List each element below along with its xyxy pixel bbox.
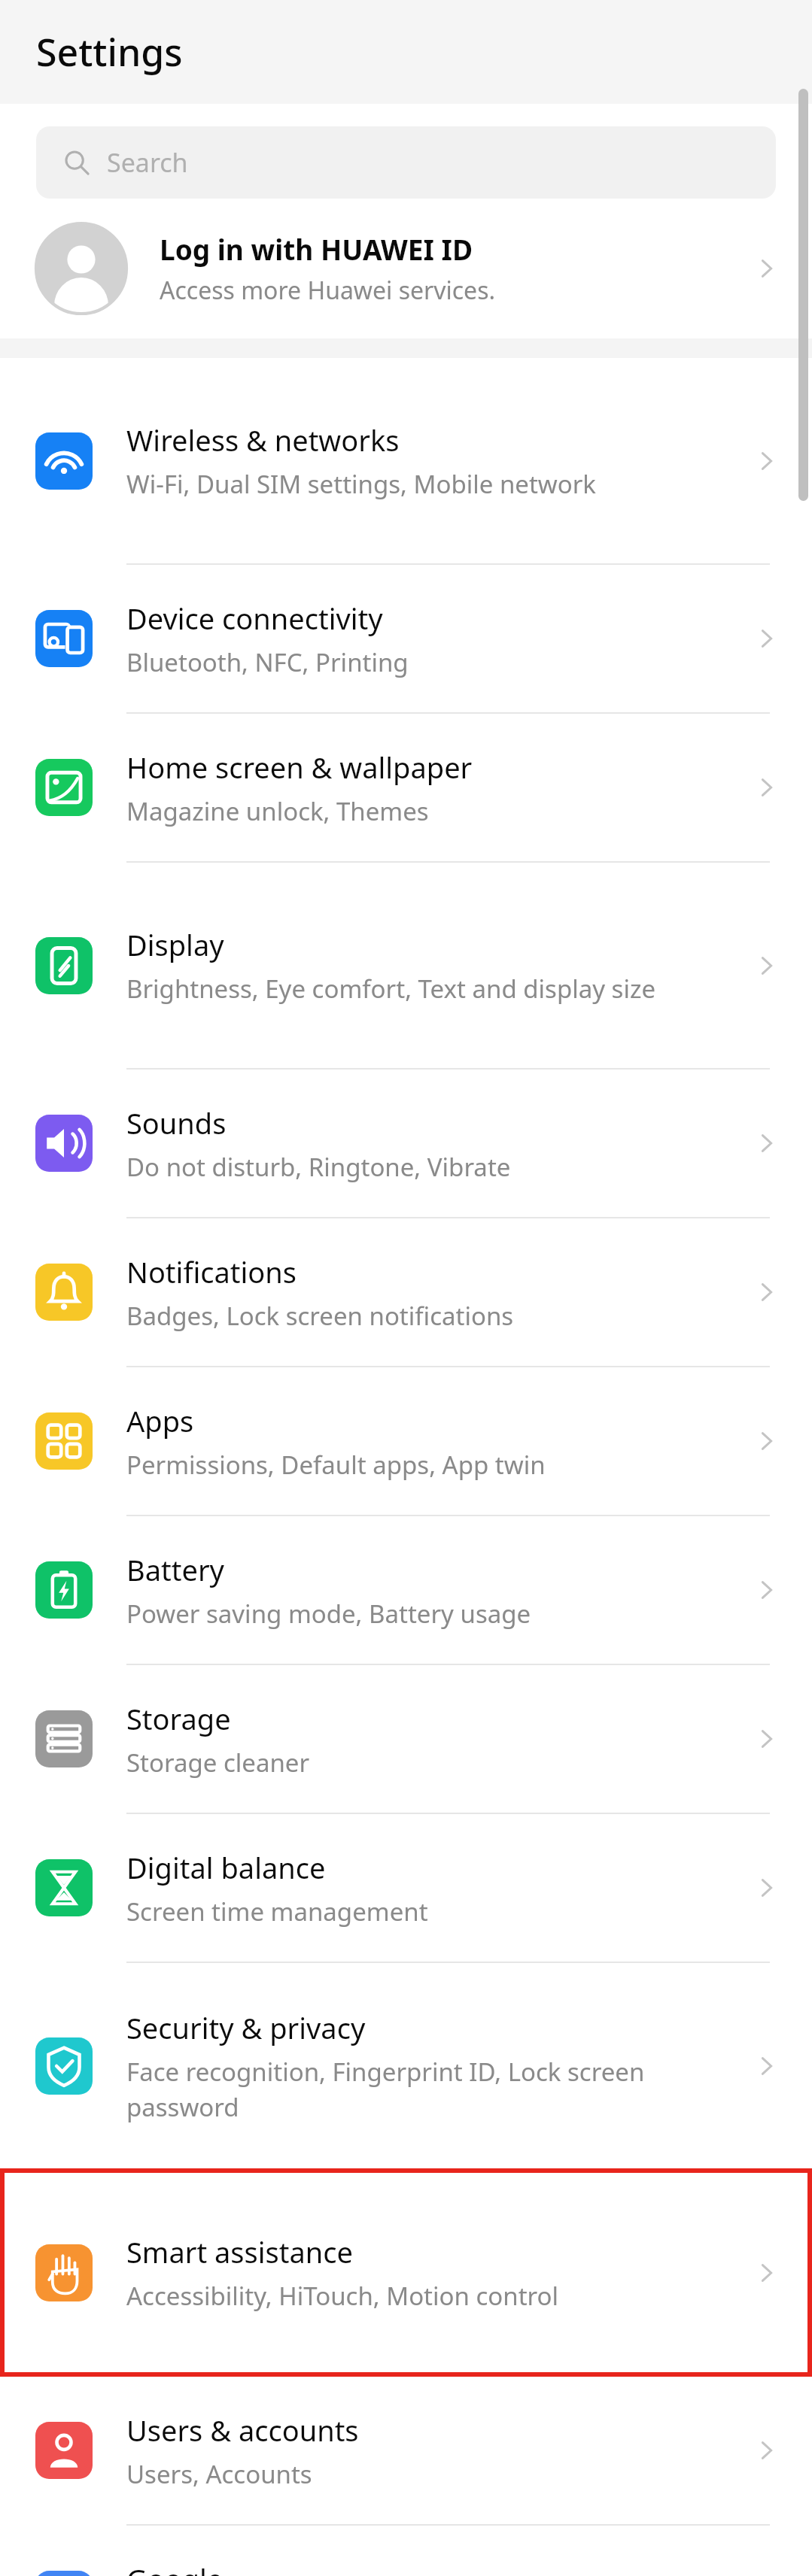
staticText: Face recognition, Fingerprint ID, Lock s… <box>126 2055 741 2124</box>
staticText: Apps <box>126 1401 194 1440</box>
staticText: Security & privacy <box>126 2008 366 2047</box>
button[interactable]: Display <box>0 863 812 1068</box>
button[interactable]: Notifications <box>0 1218 812 1366</box>
staticText: Badges, Lock screen notifications <box>126 1299 514 1333</box>
staticText: Search <box>107 145 188 180</box>
staticText: Permissions, Default apps, App twin <box>126 1448 546 1482</box>
staticText: Log in with HUAWEI ID <box>160 230 473 268</box>
staticText: Sounds <box>126 1103 227 1142</box>
staticText: Device connectivity <box>126 599 383 638</box>
button[interactable]: Smart assistance <box>0 2170 812 2375</box>
staticText: Accessibility, HiTouch, Motion control <box>126 2279 559 2313</box>
staticText: Home screen & wallpaper <box>126 748 473 787</box>
staticText: Wireless & networks <box>126 420 400 460</box>
staticText: Storage cleaner <box>126 1746 310 1780</box>
staticText: Do not disturb, Ringtone, Vibrate <box>126 1150 511 1184</box>
staticText: Users, Accounts <box>126 2457 312 2491</box>
staticText: Battery <box>126 1550 224 1589</box>
staticText: Brightness, Eye comfort, Text and displa… <box>126 972 656 1006</box>
staticText: Bluetooth, NFC, Printing <box>126 645 409 679</box>
staticText: Storage <box>126 1699 231 1738</box>
button[interactable]: Apps <box>0 1367 812 1515</box>
staticText: Google <box>126 2559 224 2576</box>
button[interactable]: Digital balance <box>0 1814 812 1962</box>
staticText: Display <box>126 925 224 964</box>
button[interactable]: Users & accounts <box>0 2377 812 2524</box>
button[interactable]: Security & privacy <box>0 1963 812 2168</box>
button[interactable]: Battery <box>0 1516 812 1664</box>
staticText: Digital balance <box>126 1848 326 1887</box>
staticText: Wi-Fi, Dual SIM settings, Mobile network <box>126 467 596 501</box>
staticText: Users & accounts <box>126 2411 359 2450</box>
button[interactable]: Google <box>0 2526 812 2576</box>
button[interactable]: Log in with HUAWEI ID <box>0 199 812 338</box>
staticText: Notifications <box>126 1252 297 1291</box>
staticText: Screen time management <box>126 1895 428 1928</box>
staticText: Power saving mode, Battery usage <box>126 1597 531 1631</box>
staticText: Smart assistance <box>126 2232 353 2271</box>
button[interactable]: Wireless & networks <box>0 358 812 563</box>
button[interactable]: Search <box>36 126 776 199</box>
button[interactable]: Sounds <box>0 1070 812 1217</box>
button[interactable]: Storage <box>0 1665 812 1813</box>
button[interactable]: Home screen & wallpaper <box>0 714 812 861</box>
staticText: Magazine unlock, Themes <box>126 794 429 828</box>
staticText: Settings <box>36 26 183 77</box>
button[interactable]: Device connectivity <box>0 565 812 712</box>
staticText: Access more Huawei services. <box>160 274 496 307</box>
